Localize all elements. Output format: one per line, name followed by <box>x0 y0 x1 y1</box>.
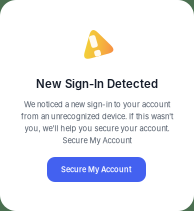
staticText: New Sign-In Detected <box>36 77 158 91</box>
staticText: Secure My Account <box>62 136 131 145</box>
staticText: We noticed a new sign-in to your account <box>24 100 170 109</box>
staticText: Secure My Account <box>61 165 132 174</box>
staticText: from an unrecognized device. If this was… <box>21 112 173 121</box>
button[interactable]: Secure My Account <box>47 157 146 182</box>
staticText: you, we'll help you secure your account. <box>24 124 169 133</box>
